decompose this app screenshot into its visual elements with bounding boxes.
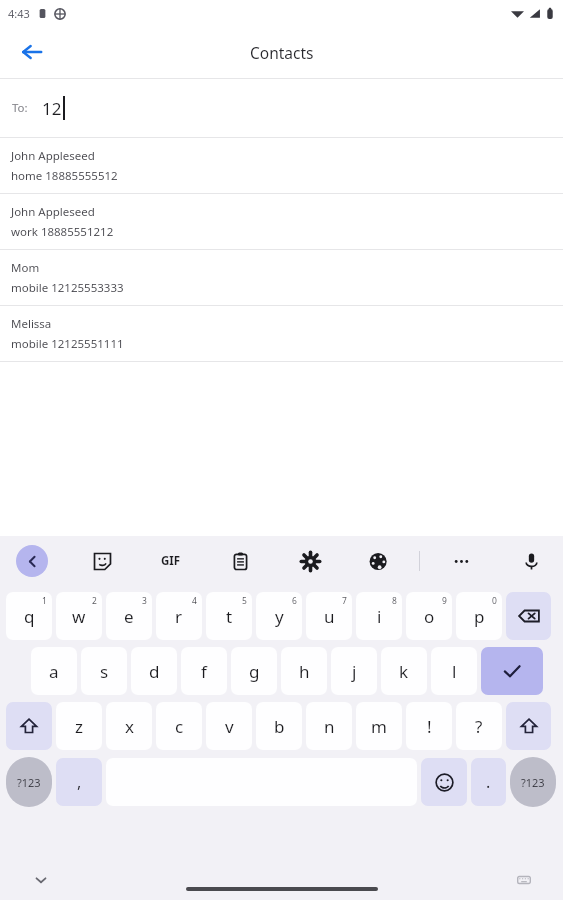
button[interactable]: b bbox=[256, 702, 302, 750]
staticText: d bbox=[149, 660, 160, 683]
button[interactable]: Hide keyboard bbox=[26, 865, 56, 895]
button[interactable]: Settings bbox=[291, 542, 329, 580]
button[interactable]: , bbox=[56, 758, 102, 806]
staticText: e bbox=[124, 605, 134, 628]
button[interactable]: m bbox=[356, 702, 402, 750]
staticText: t bbox=[226, 605, 233, 628]
button[interactable]: Expand toolbar bbox=[16, 545, 48, 577]
staticText: 3 bbox=[142, 595, 147, 607]
staticText: ?123 bbox=[17, 775, 41, 790]
button[interactable]: John Appleseed bbox=[0, 138, 563, 193]
staticText: i bbox=[377, 605, 382, 628]
button[interactable]: n bbox=[306, 702, 352, 750]
button[interactable]: Emoji bbox=[421, 758, 467, 806]
staticText: v bbox=[225, 715, 234, 738]
staticText: h bbox=[299, 660, 310, 683]
button[interactable]: i bbox=[356, 592, 402, 640]
staticText: z bbox=[75, 715, 83, 738]
button[interactable]: a bbox=[31, 647, 77, 695]
staticText: g bbox=[249, 660, 260, 683]
staticText: l bbox=[452, 660, 457, 683]
button[interactable]: x bbox=[106, 702, 152, 750]
button[interactable]: y bbox=[256, 592, 302, 640]
staticText: Mom bbox=[11, 260, 40, 276]
button[interactable]: Shift bbox=[6, 702, 52, 750]
staticText: w bbox=[72, 605, 86, 628]
staticText: work 18885551212 bbox=[11, 224, 114, 240]
staticText: ! bbox=[427, 715, 432, 738]
button[interactable]: w bbox=[56, 592, 102, 640]
button[interactable]: u bbox=[306, 592, 352, 640]
staticText: q bbox=[24, 605, 35, 628]
staticText: mobile 12125551111 bbox=[11, 336, 124, 352]
button[interactable]: To: bbox=[0, 79, 563, 137]
staticText: m bbox=[371, 715, 387, 738]
button[interactable]: s bbox=[81, 647, 127, 695]
button[interactable]: ?123 bbox=[6, 757, 52, 807]
staticText: 0 bbox=[492, 595, 497, 607]
button[interactable]: Shift bbox=[506, 702, 551, 750]
staticText: b bbox=[274, 715, 285, 738]
button[interactable]: h bbox=[281, 647, 327, 695]
button[interactable]: q bbox=[6, 592, 52, 640]
staticText: To: bbox=[12, 100, 28, 116]
staticText: home 18885555512 bbox=[11, 168, 118, 184]
staticText: 9 bbox=[442, 595, 447, 607]
button[interactable]: c bbox=[156, 702, 202, 750]
button[interactable]: ? bbox=[456, 702, 502, 750]
staticText: j bbox=[352, 660, 357, 683]
button[interactable]: l bbox=[431, 647, 477, 695]
staticText: 12 bbox=[42, 97, 62, 120]
staticText: GIF bbox=[161, 553, 181, 569]
button[interactable]: Mom bbox=[0, 250, 563, 305]
staticText: Contacts bbox=[250, 42, 314, 63]
button[interactable]: k bbox=[381, 647, 427, 695]
staticText: . bbox=[486, 771, 491, 793]
button[interactable]: More options bbox=[442, 542, 480, 580]
button[interactable]: o bbox=[406, 592, 452, 640]
button[interactable]: g bbox=[231, 647, 277, 695]
button[interactable]: v bbox=[206, 702, 252, 750]
staticText: 8 bbox=[392, 595, 397, 607]
button[interactable]: Voice input bbox=[512, 542, 550, 580]
button[interactable]: Melissa bbox=[0, 306, 563, 361]
button[interactable]: f bbox=[181, 647, 227, 695]
button[interactable]: John Appleseed bbox=[0, 194, 563, 249]
staticText: John Appleseed bbox=[11, 204, 95, 220]
staticText: u bbox=[324, 605, 335, 628]
staticText: a bbox=[49, 660, 59, 683]
staticText: 4:43 bbox=[8, 6, 30, 21]
button[interactable]: z bbox=[56, 702, 102, 750]
button[interactable]: Switch keyboard bbox=[509, 865, 539, 895]
button[interactable]: Backspace bbox=[506, 592, 551, 640]
button[interactable]: t bbox=[206, 592, 252, 640]
button[interactable]: Enter bbox=[481, 647, 543, 695]
button[interactable]: p bbox=[456, 592, 502, 640]
button[interactable]: d bbox=[131, 647, 177, 695]
staticText: c bbox=[175, 715, 184, 738]
staticText: y bbox=[275, 605, 284, 628]
staticText: p bbox=[474, 605, 485, 628]
staticText: 6 bbox=[292, 595, 297, 607]
staticText: mobile 12125553333 bbox=[11, 280, 124, 296]
button[interactable]: Themes bbox=[359, 542, 397, 580]
button[interactable]: j bbox=[331, 647, 377, 695]
button[interactable]: ! bbox=[406, 702, 452, 750]
button[interactable]: . bbox=[471, 758, 506, 806]
staticText: k bbox=[399, 660, 409, 683]
button[interactable]: GIF bbox=[152, 542, 190, 580]
button[interactable]: r bbox=[156, 592, 202, 640]
button[interactable]: Clipboard bbox=[221, 542, 259, 580]
button[interactable]: ?123 bbox=[510, 757, 556, 807]
staticText: 5 bbox=[242, 595, 247, 607]
staticText: n bbox=[324, 715, 335, 738]
button[interactable]: Stickers bbox=[83, 542, 121, 580]
staticText: f bbox=[201, 660, 207, 683]
button[interactable]: Back bbox=[10, 30, 54, 74]
staticText: , bbox=[77, 771, 82, 793]
staticText: 4 bbox=[192, 595, 197, 607]
staticText: John Appleseed bbox=[11, 148, 95, 164]
button[interactable]: e bbox=[106, 592, 152, 640]
staticText: ?123 bbox=[521, 775, 545, 790]
